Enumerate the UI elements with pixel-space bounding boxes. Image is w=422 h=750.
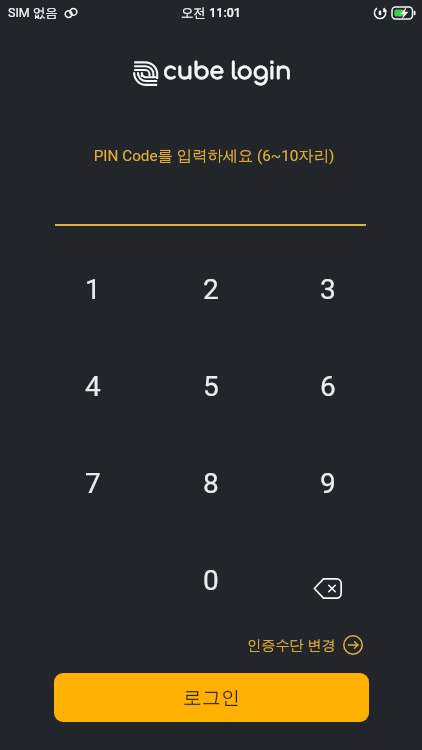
staticText: 3 <box>320 273 336 306</box>
button[interactable]: 6 <box>269 338 386 435</box>
button[interactable]: 5 <box>152 338 269 435</box>
staticText: 인증수단 변경 <box>247 636 336 654</box>
button[interactable]: 인증수단 변경 <box>244 632 366 658</box>
staticText: 9 <box>320 467 336 500</box>
other: Change authentication method <box>343 635 363 655</box>
staticText: cube login <box>163 58 292 84</box>
staticText: 0 <box>203 564 219 597</box>
button[interactable]: 0 <box>152 532 269 629</box>
staticText: 4 <box>85 370 101 403</box>
staticText: 2 <box>203 273 219 306</box>
button[interactable]: 2 <box>152 241 269 338</box>
button[interactable]: 1 <box>34 241 152 338</box>
button[interactable]: 7 <box>34 435 152 532</box>
button[interactable]: Backspace <box>269 532 386 629</box>
staticText: SIM 없음 <box>8 5 58 21</box>
button[interactable]: 4 <box>34 338 152 435</box>
staticText: 7 <box>85 467 101 500</box>
other: Backspace <box>313 578 342 599</box>
staticText: PIN Code를 입력하세요 (6~10자리) <box>3 146 422 165</box>
button[interactable]: 로그인 <box>54 673 369 722</box>
button[interactable]: 8 <box>152 435 269 532</box>
staticText: 6 <box>320 370 336 403</box>
button[interactable]: 3 <box>269 241 386 338</box>
staticText: 오전 11:01 <box>0 5 422 21</box>
staticText: 5 <box>203 370 219 403</box>
button[interactable]: 9 <box>269 435 386 532</box>
staticText: 로그인 <box>183 686 240 710</box>
staticText: 1 <box>85 273 101 306</box>
staticText: 8 <box>203 467 219 500</box>
other: Auto rotate <box>373 6 387 20</box>
other: No SIM <box>64 6 78 20</box>
